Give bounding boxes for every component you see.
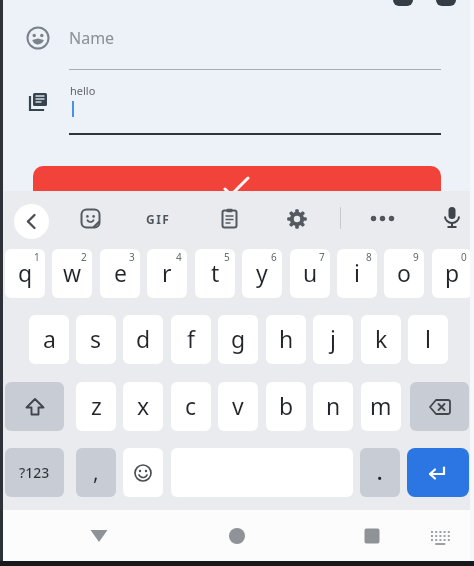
- button[interactable]: e: [100, 249, 140, 298]
- button[interactable]: l: [408, 315, 448, 364]
- staticText: 1: [34, 250, 40, 264]
- staticText: g: [231, 323, 246, 354]
- staticText: GIF: [146, 211, 171, 227]
- staticText: ?123: [19, 463, 50, 482]
- button[interactable]: GIF: [146, 211, 176, 227]
- button[interactable]: t: [195, 249, 235, 298]
- button[interactable]: [219, 208, 241, 230]
- staticText: s: [90, 323, 102, 354]
- staticText: h: [279, 323, 294, 354]
- staticText: b: [279, 390, 294, 421]
- staticText: j: [330, 323, 336, 354]
- button[interactable]: y: [242, 249, 282, 298]
- button[interactable]: h: [266, 315, 306, 364]
- button[interactable]: u: [290, 249, 330, 298]
- staticText: ,: [93, 458, 99, 487]
- button[interactable]: [33, 166, 441, 191]
- button[interactable]: k: [361, 315, 401, 364]
- button[interactable]: [286, 208, 308, 230]
- staticText: .: [377, 460, 383, 486]
- button[interactable]: [407, 448, 469, 497]
- staticText: c: [185, 390, 197, 421]
- staticText: u: [303, 257, 318, 288]
- staticText: v: [232, 390, 244, 421]
- staticText: m: [370, 390, 392, 421]
- staticText: o: [397, 257, 411, 288]
- staticText: Name: [69, 27, 115, 49]
- button[interactable]: c: [171, 382, 211, 431]
- button[interactable]: n: [313, 382, 353, 431]
- staticText: 7: [319, 250, 325, 264]
- button[interactable]: v: [218, 382, 258, 431]
- staticText: k: [375, 323, 388, 354]
- staticText: 5: [224, 250, 230, 264]
- staticText: e: [114, 257, 127, 288]
- staticText: q: [18, 257, 33, 288]
- staticText: 0: [461, 250, 467, 264]
- button[interactable]: z: [76, 382, 116, 431]
- button[interactable]: f: [171, 315, 211, 364]
- button[interactable]: s: [76, 315, 116, 364]
- button[interactable]: [123, 448, 163, 497]
- button[interactable]: x: [123, 382, 163, 431]
- button[interactable]: hello: [69, 82, 441, 132]
- staticText: 3: [129, 250, 135, 264]
- button[interactable]: [410, 382, 469, 431]
- staticText: p: [445, 257, 460, 288]
- button[interactable]: a: [29, 315, 69, 364]
- button[interactable]: [364, 528, 380, 544]
- staticText: y: [256, 257, 268, 288]
- staticText: hello: [70, 83, 96, 98]
- button[interactable]: ?123: [5, 448, 64, 497]
- button[interactable]: j: [313, 315, 353, 364]
- button[interactable]: [5, 382, 64, 431]
- staticText: 4: [176, 250, 182, 264]
- staticText: n: [326, 390, 341, 421]
- button[interactable]: m: [361, 382, 401, 431]
- staticText: x: [137, 390, 150, 421]
- staticText: r: [162, 257, 172, 288]
- button[interactable]: .: [360, 448, 400, 497]
- button[interactable]: [441, 206, 463, 232]
- staticText: f: [187, 323, 195, 354]
- button[interactable]: [430, 530, 451, 545]
- staticText: a: [43, 323, 56, 354]
- button[interactable]: ,: [76, 448, 116, 497]
- button[interactable]: Name: [69, 27, 441, 51]
- button[interactable]: g: [218, 315, 258, 364]
- button[interactable]: b: [266, 382, 306, 431]
- button[interactable]: [370, 214, 395, 223]
- staticText: d: [136, 323, 151, 354]
- staticText: z: [91, 390, 102, 421]
- button[interactable]: r: [147, 249, 187, 298]
- button[interactable]: q: [5, 249, 45, 298]
- staticText: 8: [366, 250, 372, 264]
- button[interactable]: [88, 527, 110, 545]
- staticText: 6: [271, 250, 277, 264]
- button[interactable]: p: [432, 249, 472, 298]
- staticText: t: [211, 257, 220, 288]
- staticText: w: [63, 257, 82, 288]
- button[interactable]: w: [52, 249, 92, 298]
- button[interactable]: i: [337, 249, 377, 298]
- button[interactable]: o: [384, 249, 424, 298]
- staticText: 2: [81, 250, 87, 264]
- staticText: i: [354, 257, 360, 288]
- staticText: 9: [413, 250, 419, 264]
- button[interactable]: [80, 208, 102, 230]
- button[interactable]: [14, 204, 49, 239]
- button[interactable]: d: [123, 315, 163, 364]
- staticText: l: [425, 323, 431, 354]
- button[interactable]: [228, 527, 246, 545]
